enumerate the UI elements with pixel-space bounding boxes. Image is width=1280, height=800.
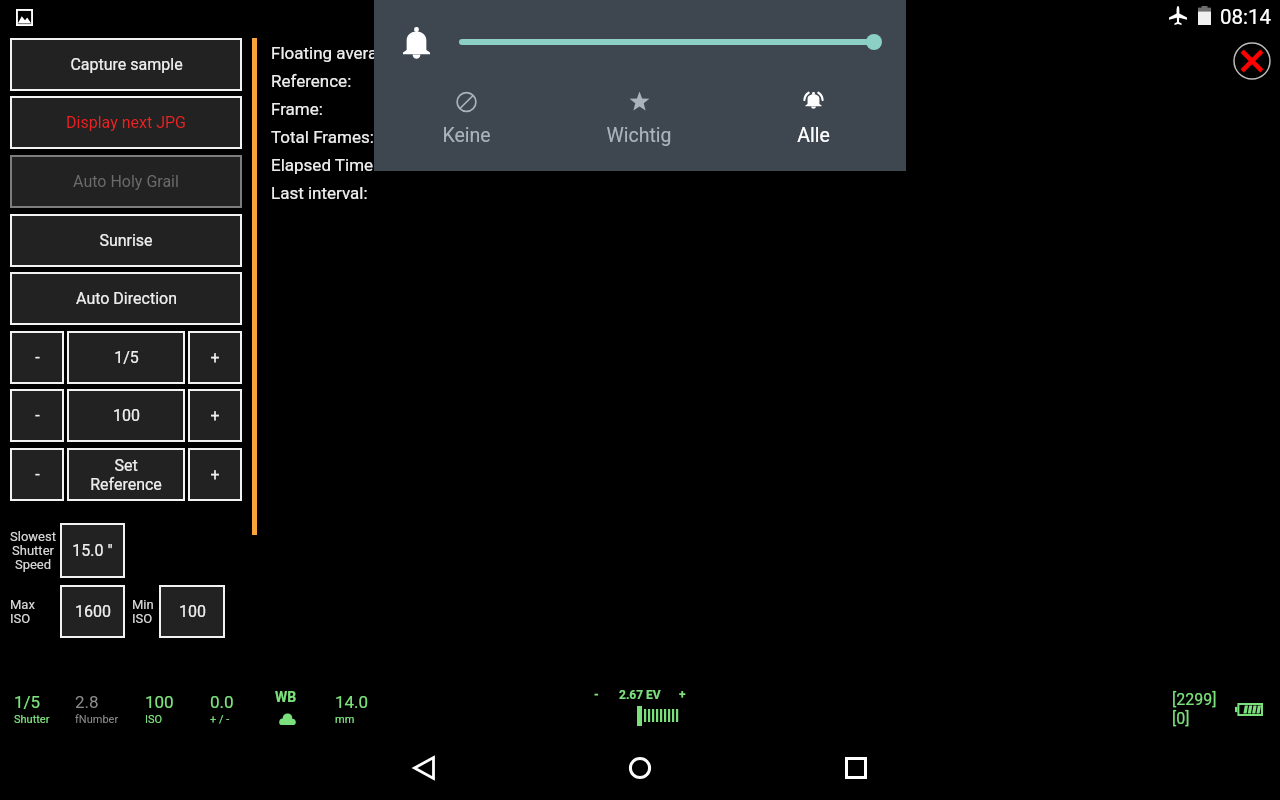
button[interactable]: Set Reference <box>69 450 183 499</box>
staticText: 1/5 <box>14 692 41 712</box>
staticText: Alle <box>797 124 830 147</box>
staticText: Keine <box>442 124 491 147</box>
staticText: 2.67 EV <box>619 688 661 702</box>
staticText: Total Frames: <box>271 127 374 147</box>
button[interactable]: Home <box>616 744 664 792</box>
button[interactable]: Back <box>400 744 448 792</box>
staticText: + / - <box>210 713 230 726</box>
staticText: Sunrise <box>99 231 153 250</box>
staticText: - <box>35 406 40 425</box>
staticText: Shutter <box>14 713 50 726</box>
button[interactable]: Alle <box>758 87 868 153</box>
staticText: - <box>594 688 599 702</box>
staticText: Slowest Shutter Speed <box>9 529 57 572</box>
button[interactable]: Volume <box>866 34 882 50</box>
staticText: Display next JPG <box>66 113 186 132</box>
staticText: Frame: <box>271 99 323 119</box>
button[interactable]: Stop <box>1233 42 1271 80</box>
staticText: mm <box>335 713 355 726</box>
staticText: Reference: <box>271 71 352 91</box>
staticText: Wichtig <box>606 124 672 147</box>
staticText: - <box>35 348 40 367</box>
button[interactable]: - <box>12 391 62 440</box>
button[interactable]: Capture sample <box>12 40 240 89</box>
button[interactable]: 15.0 " <box>62 525 123 576</box>
staticText: + <box>210 465 220 484</box>
button[interactable]: + <box>190 391 240 440</box>
button[interactable]: Auto Holy Grail <box>12 157 240 206</box>
button[interactable]: 1600 <box>62 587 123 636</box>
button[interactable]: Auto Direction <box>12 274 240 323</box>
staticText: 15.0 " <box>72 541 113 560</box>
staticText: Max ISO <box>10 597 50 626</box>
button[interactable]: WB <box>275 689 303 727</box>
button[interactable]: + <box>190 450 240 499</box>
staticText: 1/5 <box>114 348 139 367</box>
staticText: + <box>679 688 686 702</box>
staticText: Auto Direction <box>76 289 177 308</box>
staticText: Set Reference <box>90 456 162 494</box>
staticText: 14.0 <box>335 692 369 712</box>
staticText: WB <box>275 689 297 705</box>
staticText: 08:14 <box>1220 5 1272 29</box>
button[interactable]: Display next JPG <box>12 98 240 147</box>
button[interactable]: Gallery <box>10 5 38 29</box>
staticText: Capture sample <box>70 55 183 74</box>
staticText: - <box>35 465 40 484</box>
staticText: 1600 <box>75 602 111 621</box>
staticText: [0] <box>1172 709 1190 728</box>
button[interactable]: 1/5 <box>69 333 183 382</box>
staticText: Last interval: <box>271 183 368 203</box>
button[interactable]: Keine <box>411 87 521 153</box>
staticText: [2299] <box>1172 690 1217 709</box>
staticText: Min ISO <box>132 597 172 626</box>
staticText: Elapsed Time: <box>271 155 378 175</box>
staticText: Auto Holy Grail <box>73 172 179 191</box>
button[interactable]: Sunrise <box>12 216 240 265</box>
staticText: + <box>210 348 220 367</box>
button[interactable]: - <box>12 333 62 382</box>
staticText: + <box>210 406 220 425</box>
button[interactable]: + <box>190 333 240 382</box>
staticText: 0.0 <box>210 692 234 712</box>
staticText: Floating average: <box>271 43 400 63</box>
staticText: ISO <box>145 713 163 726</box>
button[interactable]: Recents <box>832 744 880 792</box>
staticText: 100 <box>145 692 174 712</box>
staticText: 2.8 <box>75 692 99 712</box>
staticText: fNumber <box>75 713 119 726</box>
button[interactable]: 100 <box>69 391 183 440</box>
staticText: 100 <box>113 406 140 425</box>
button[interactable]: Wichtig <box>584 87 694 153</box>
button[interactable]: - <box>592 688 688 704</box>
button[interactable]: 100 <box>161 587 223 636</box>
button[interactable]: - <box>12 450 62 499</box>
staticText: 100 <box>179 602 206 621</box>
